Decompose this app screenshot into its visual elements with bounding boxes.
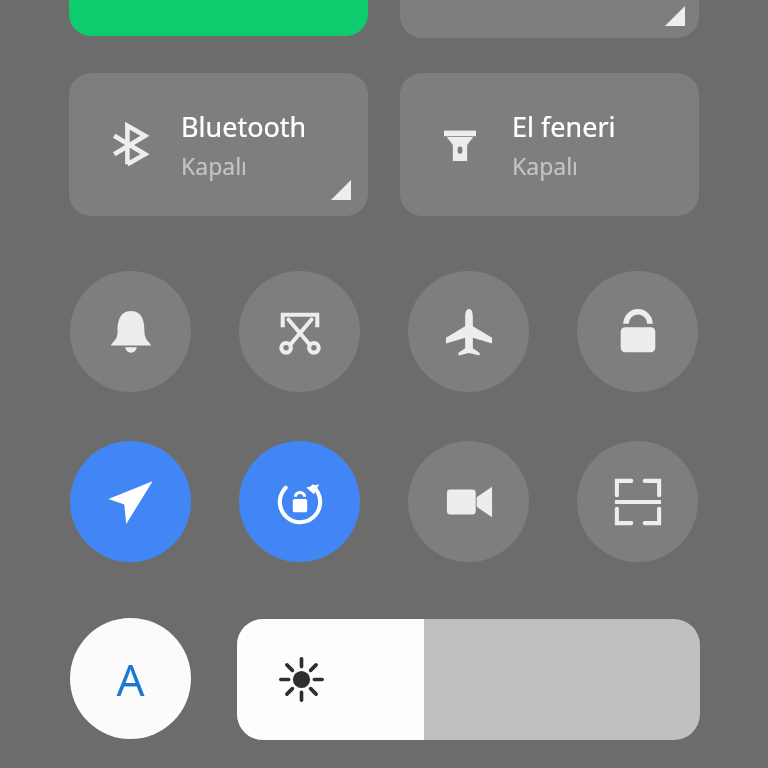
button[interactable]: Ekran kaydı [408, 441, 529, 562]
button[interactable]: Bluetooth [69, 73, 368, 216]
staticText: A [116, 649, 145, 709]
button[interactable]: QR tarayıcı [577, 441, 698, 562]
button[interactable]: Mobile data [400, 0, 699, 38]
button[interactable]: Otomatik parlaklık [70, 618, 191, 739]
staticText: El feneri [512, 108, 616, 145]
button[interactable]: El feneri [400, 73, 699, 216]
button[interactable]: Wi-Fi [69, 0, 368, 36]
button[interactable]: Ekran görüntüsü [239, 271, 360, 392]
staticText: Bluetooth [181, 108, 307, 145]
button[interactable]: Parlaklık [237, 619, 700, 740]
staticText: Kapalı [512, 150, 579, 181]
button[interactable]: Konum [70, 441, 191, 562]
button[interactable]: Otomatik döndürme [239, 441, 360, 562]
button[interactable]: Uçak modu [408, 271, 529, 392]
button[interactable]: Ekran kilidi [577, 271, 698, 392]
button[interactable]: Bildirimler [70, 271, 191, 392]
staticText: Kapalı [181, 150, 248, 181]
